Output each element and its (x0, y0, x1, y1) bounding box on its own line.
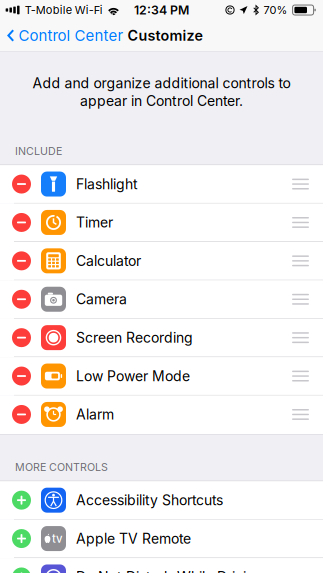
staticText: tv (52, 532, 63, 545)
staticText: Screen Recording (76, 329, 193, 346)
button[interactable]: Accessibility Shortcuts (0, 481, 323, 520)
staticText: Apple TV Remote (76, 530, 191, 547)
staticText: 70% (264, 3, 288, 17)
staticText: Flashlight (76, 176, 138, 192)
staticText: Control Center (19, 26, 124, 44)
button[interactable]: Camera (0, 280, 323, 319)
staticText: INCLUDE (15, 145, 62, 157)
staticText: appear in Control Center. (80, 92, 243, 109)
button[interactable]: Alarm (0, 396, 323, 434)
button[interactable]: Flashlight (0, 165, 323, 204)
staticText: Add and organize additional controls to (32, 75, 290, 91)
staticText: Alarm (76, 406, 114, 423)
staticText: Accessibility Shortcuts (76, 492, 223, 509)
button[interactable]: Calculator (0, 242, 323, 280)
button[interactable]: Low Power Mode (0, 357, 323, 396)
staticText: Do Not Disturb While Driving (76, 568, 263, 573)
staticText: Camera (76, 291, 127, 308)
staticText: Customize (128, 27, 203, 44)
button[interactable]: Screen Recording (0, 319, 323, 357)
button[interactable]: Control Center (0, 20, 128, 50)
staticText: T-Mobile Wi-Fi (25, 3, 103, 17)
button[interactable]: Do Not Disturb While Driving (0, 558, 323, 573)
staticText: Timer (76, 214, 113, 231)
staticText: 12:34 PM (134, 2, 189, 17)
button[interactable]: tv (0, 520, 323, 558)
button[interactable]: Timer (0, 204, 323, 242)
staticText: Calculator (76, 252, 141, 269)
staticText: Low Power Mode (76, 368, 190, 384)
staticText: MORE CONTROLS (15, 461, 108, 474)
